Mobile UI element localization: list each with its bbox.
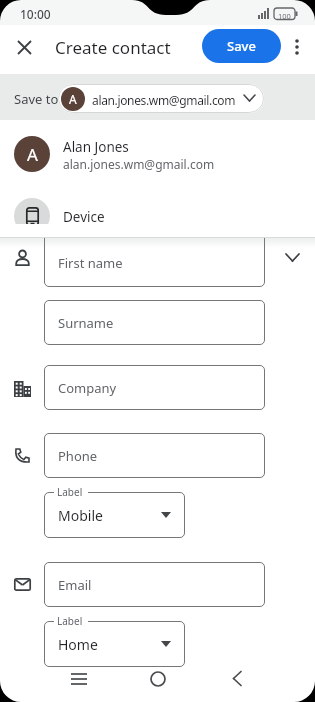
- staticText: Company: [58, 379, 117, 397]
- button[interactable]: [220, 662, 253, 695]
- button[interactable]: A: [58, 84, 264, 113]
- button[interactable]: A: [0, 125, 315, 183]
- button[interactable]: [62, 662, 95, 695]
- staticText: Save to: [14, 90, 59, 108]
- staticText: Surname: [58, 314, 114, 332]
- staticText: Home: [58, 635, 98, 654]
- staticText: alan.jones.wm@gmail.com: [92, 92, 236, 108]
- staticText: alan.jones.wm@gmail.com: [63, 156, 215, 172]
- button[interactable]: Mobile: [44, 492, 185, 538]
- staticText: Device: [63, 208, 105, 226]
- staticText: Label: [57, 614, 83, 628]
- button[interactable]: Surname: [44, 300, 265, 345]
- staticText: Alan Jones: [63, 138, 129, 156]
- staticText: Create contact: [55, 36, 171, 59]
- staticText: Mobile: [58, 506, 103, 525]
- staticText: Label: [57, 485, 83, 499]
- staticText: 100: [278, 11, 291, 21]
- button[interactable]: Phone: [44, 433, 265, 478]
- staticText: Save: [227, 37, 256, 55]
- button[interactable]: [284, 31, 310, 63]
- staticText: First name: [58, 254, 123, 272]
- button[interactable]: Company: [44, 365, 265, 410]
- staticText: Email: [58, 576, 92, 594]
- button[interactable]: [278, 243, 306, 271]
- button[interactable]: Device: [0, 192, 315, 240]
- button[interactable]: Save: [202, 29, 281, 63]
- staticText: A: [27, 143, 38, 166]
- staticText: Phone: [58, 447, 98, 465]
- button[interactable]: Home: [44, 621, 185, 667]
- button[interactable]: Email: [44, 562, 265, 607]
- button[interactable]: [141, 662, 174, 695]
- staticText: A: [69, 91, 77, 107]
- button[interactable]: [8, 31, 40, 63]
- staticText: 10:00: [20, 6, 51, 22]
